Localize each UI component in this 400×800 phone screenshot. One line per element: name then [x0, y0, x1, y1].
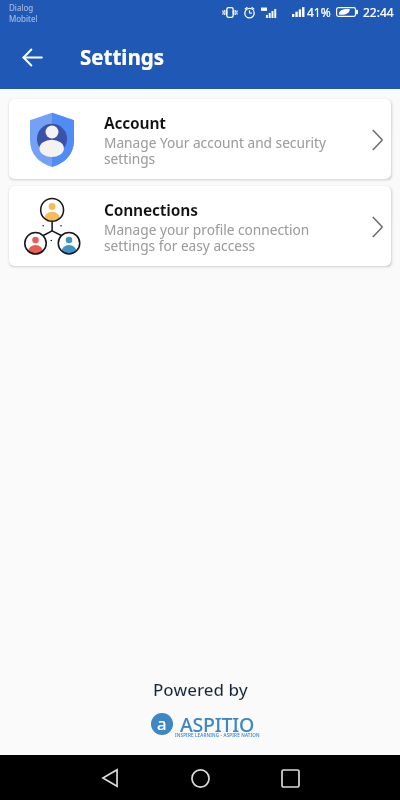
button[interactable]: Back [88, 756, 132, 800]
staticText: Dialog [9, 2, 34, 13]
staticText: 22:44 [363, 4, 394, 20]
staticText: Powered by [153, 678, 248, 701]
button[interactable]: Account [9, 99, 391, 179]
staticText: ASPITIO [180, 711, 255, 738]
button[interactable]: Recent apps [268, 756, 312, 800]
staticText: Manage Your account and security setting… [104, 133, 326, 168]
staticText: Account [104, 112, 166, 133]
button[interactable]: Back [11, 36, 53, 78]
staticText: a [157, 713, 167, 734]
staticText: Settings [80, 43, 165, 71]
staticText: Mobitel [9, 13, 38, 24]
staticText: Connections [104, 199, 198, 220]
button[interactable]: Home [178, 756, 222, 800]
staticText: 41% [307, 4, 331, 20]
staticText: INSPIRE LEARNING - ASPIRE NATION [175, 732, 260, 738]
button[interactable]: Connections [9, 186, 391, 266]
staticText: Manage your profile connection settings … [104, 220, 310, 255]
